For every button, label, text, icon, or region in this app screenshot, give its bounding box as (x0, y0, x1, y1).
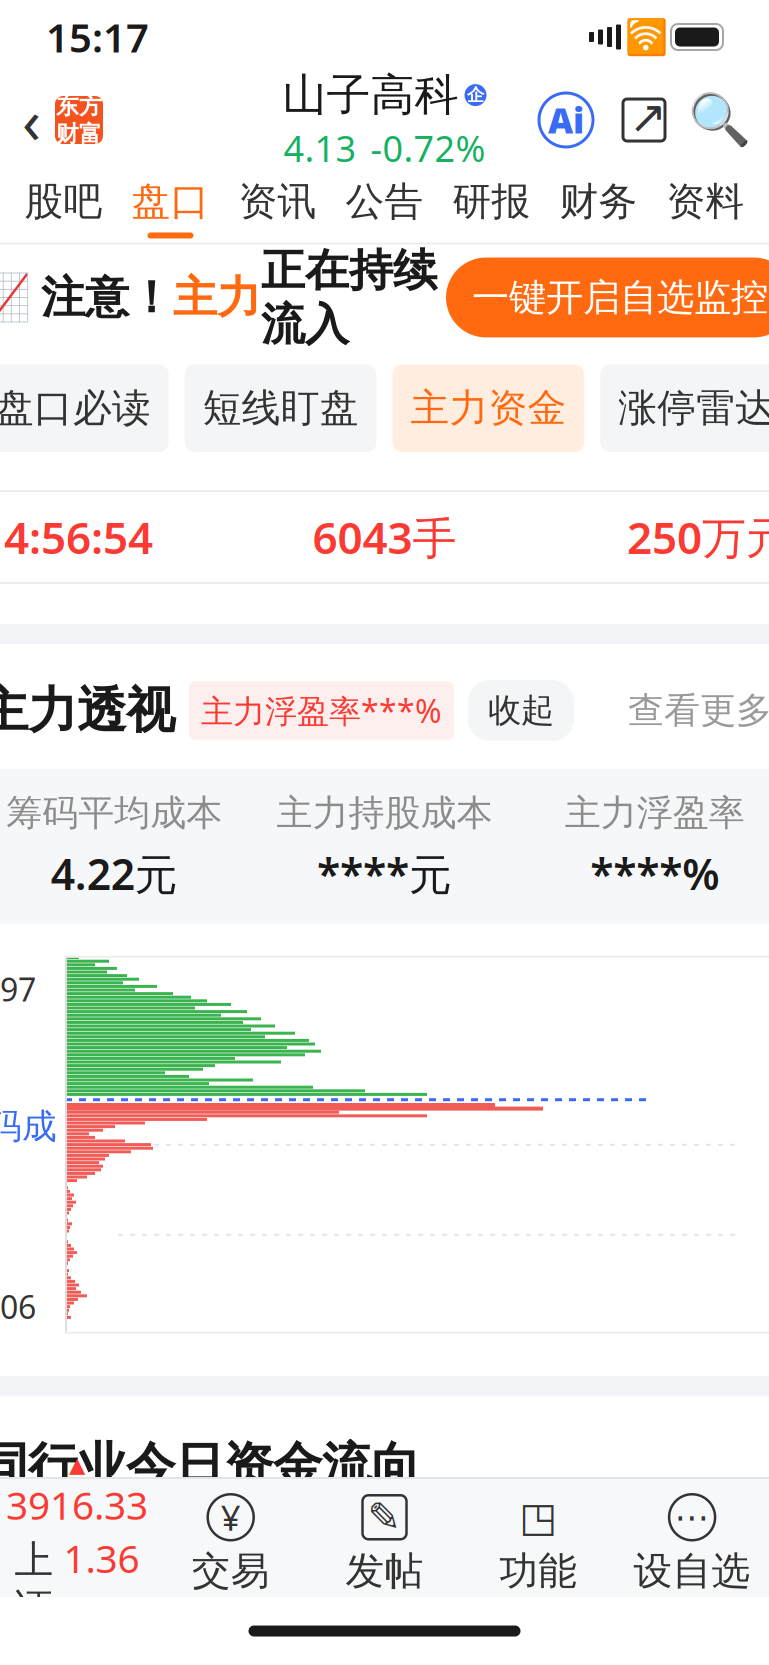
button[interactable]: 搜索 (695, 96, 743, 144)
staticText: 同行业今日资金流向 (0, 1436, 420, 1496)
button[interactable]: 股吧 (10, 166, 117, 244)
button[interactable]: 返回 (0, 73, 103, 167)
staticText: ↓ (737, 1554, 766, 1594)
staticText: 交易 (192, 1547, 270, 1595)
staticText: 1.36% (63, 1532, 139, 1635)
staticText: 筹码成本 (0, 1105, 57, 1190)
button[interactable]: 研报 (438, 166, 545, 244)
staticText: ↗ (629, 91, 667, 143)
staticText: 3916.33 (6, 1479, 148, 1530)
staticText: 企 (467, 84, 484, 106)
staticText: 研报 (452, 178, 530, 225)
staticText: 财务 (559, 178, 637, 225)
staticText: 短线盯盘 (203, 384, 359, 432)
staticText: Ai (548, 97, 584, 143)
staticText: 财富 (56, 120, 102, 148)
staticText: 筹码平均成本 (6, 791, 222, 835)
button[interactable]: 分享 (621, 91, 667, 149)
button[interactable]: 短线盯盘 (185, 364, 377, 452)
button[interactable]: 主力资金 (392, 364, 584, 452)
staticText: 汽车零部件 (159, 1549, 388, 1599)
staticText: 发帖 (345, 1547, 423, 1595)
staticText: 山子高科 (282, 68, 458, 122)
staticText: 14:56:54 (0, 508, 153, 566)
staticText: 盘口必读 (0, 384, 151, 432)
staticText: 主力持股成本 (276, 791, 492, 835)
button[interactable]: 查看更多 (628, 684, 769, 737)
staticText: 盘口 (131, 178, 209, 225)
staticText: ⋯ (675, 1498, 710, 1537)
staticText: 主力浮盈率 (565, 791, 745, 835)
button[interactable]: 涨停雷达 (600, 364, 769, 452)
button[interactable]: 所属行业 (0, 1524, 769, 1624)
staticText: 27 (687, 1548, 731, 1600)
button[interactable]: ◳ (461, 1493, 615, 1595)
staticText: 涨停雷达 (618, 384, 769, 432)
staticText: ↑ (396, 1554, 425, 1594)
staticText: 主力资金 (410, 384, 566, 432)
button[interactable]: 收起 (468, 680, 574, 741)
staticText: ▲ (69, 1453, 85, 1477)
button[interactable]: 一键开启自选监控 (446, 258, 769, 337)
staticText: 🛜 (624, 17, 667, 57)
staticText: 功能 (499, 1547, 577, 1595)
staticText: 设自选 (634, 1547, 751, 1595)
button[interactable]: ▲ (0, 1453, 154, 1635)
staticText: 收起 (488, 690, 554, 731)
staticText: 📈 (0, 272, 31, 323)
staticText: 正在持续流入 (261, 243, 437, 352)
staticText: 注意！ (41, 270, 173, 324)
staticText: 资讯 (238, 178, 316, 225)
staticText: 查看更多 (628, 688, 769, 733)
staticText: 主力透视 (0, 680, 175, 741)
staticText: ‹ (22, 79, 41, 161)
staticText: 公告 (345, 178, 423, 225)
staticText: 所属行业 (3, 1550, 159, 1598)
staticText: 15:17 (46, 10, 149, 63)
button[interactable]: ✎ (308, 1493, 461, 1595)
button[interactable]: 财务 (545, 166, 652, 244)
staticText: ◳ (519, 1495, 557, 1540)
button[interactable]: 盘口 (117, 166, 224, 244)
staticText: 6043手 (312, 508, 456, 566)
staticText: 4.97 (0, 968, 36, 1010)
staticText: 4.22元 (51, 845, 178, 902)
staticText: 🔍 (687, 91, 750, 149)
staticText: 主力 (173, 270, 261, 324)
button[interactable]: 资讯 (224, 166, 331, 244)
staticText: 主力浮盈率***% (201, 689, 442, 732)
staticText: ¥ (221, 1494, 241, 1540)
staticText: 股吧 (24, 178, 102, 225)
staticText: -0.72% (370, 124, 485, 172)
button[interactable]: AI 助手 (539, 93, 593, 147)
staticText: 2.06 (0, 1285, 36, 1328)
button[interactable]: 公告 (331, 166, 438, 244)
staticText: 4.13 (283, 124, 356, 172)
staticText: 一键开启自选监控 (472, 275, 768, 320)
staticText: 资料 (666, 178, 744, 225)
staticText: ****元 (317, 845, 452, 902)
staticText: 上证 (14, 1536, 53, 1631)
button[interactable]: ¥ (154, 1493, 308, 1595)
button[interactable]: ⋯ (615, 1493, 769, 1595)
button[interactable]: 盘口必读 (0, 364, 169, 452)
staticText: ****% (590, 845, 719, 902)
staticText: ✎ (367, 1495, 401, 1540)
staticText: 250万元 (627, 508, 769, 566)
button[interactable]: 资料 (652, 166, 759, 244)
staticText: 东方 (56, 92, 102, 120)
